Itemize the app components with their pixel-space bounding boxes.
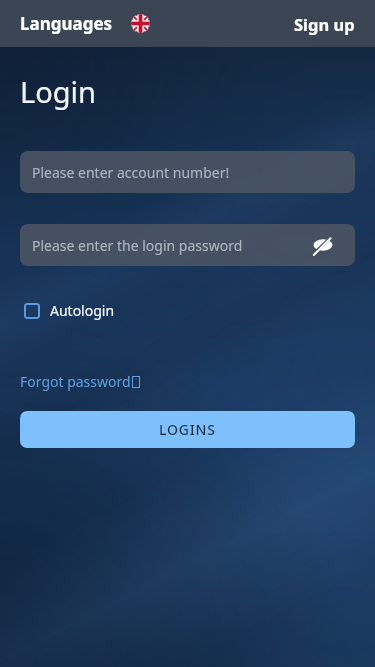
button[interactable]: Sign up bbox=[294, 13, 355, 35]
staticText: Forgot password bbox=[20, 372, 131, 391]
button[interactable]: Languages bbox=[20, 12, 150, 35]
staticText: LOGINS bbox=[159, 420, 216, 439]
staticText: Autologin bbox=[50, 301, 115, 320]
staticText: Languages bbox=[20, 12, 113, 35]
staticText: Sign up bbox=[294, 13, 355, 35]
button[interactable]: Please enter the login password bbox=[20, 224, 355, 266]
button[interactable]: Forgot password bbox=[20, 372, 140, 391]
button[interactable]: LOGINS bbox=[20, 411, 355, 448]
staticText: Login bbox=[20, 72, 96, 111]
staticText: Please enter the login password bbox=[32, 236, 243, 255]
button[interactable]: Please enter account number! bbox=[20, 151, 355, 193]
button[interactable]: Autologin bbox=[20, 301, 115, 320]
staticText: Please enter account number! bbox=[32, 163, 230, 182]
